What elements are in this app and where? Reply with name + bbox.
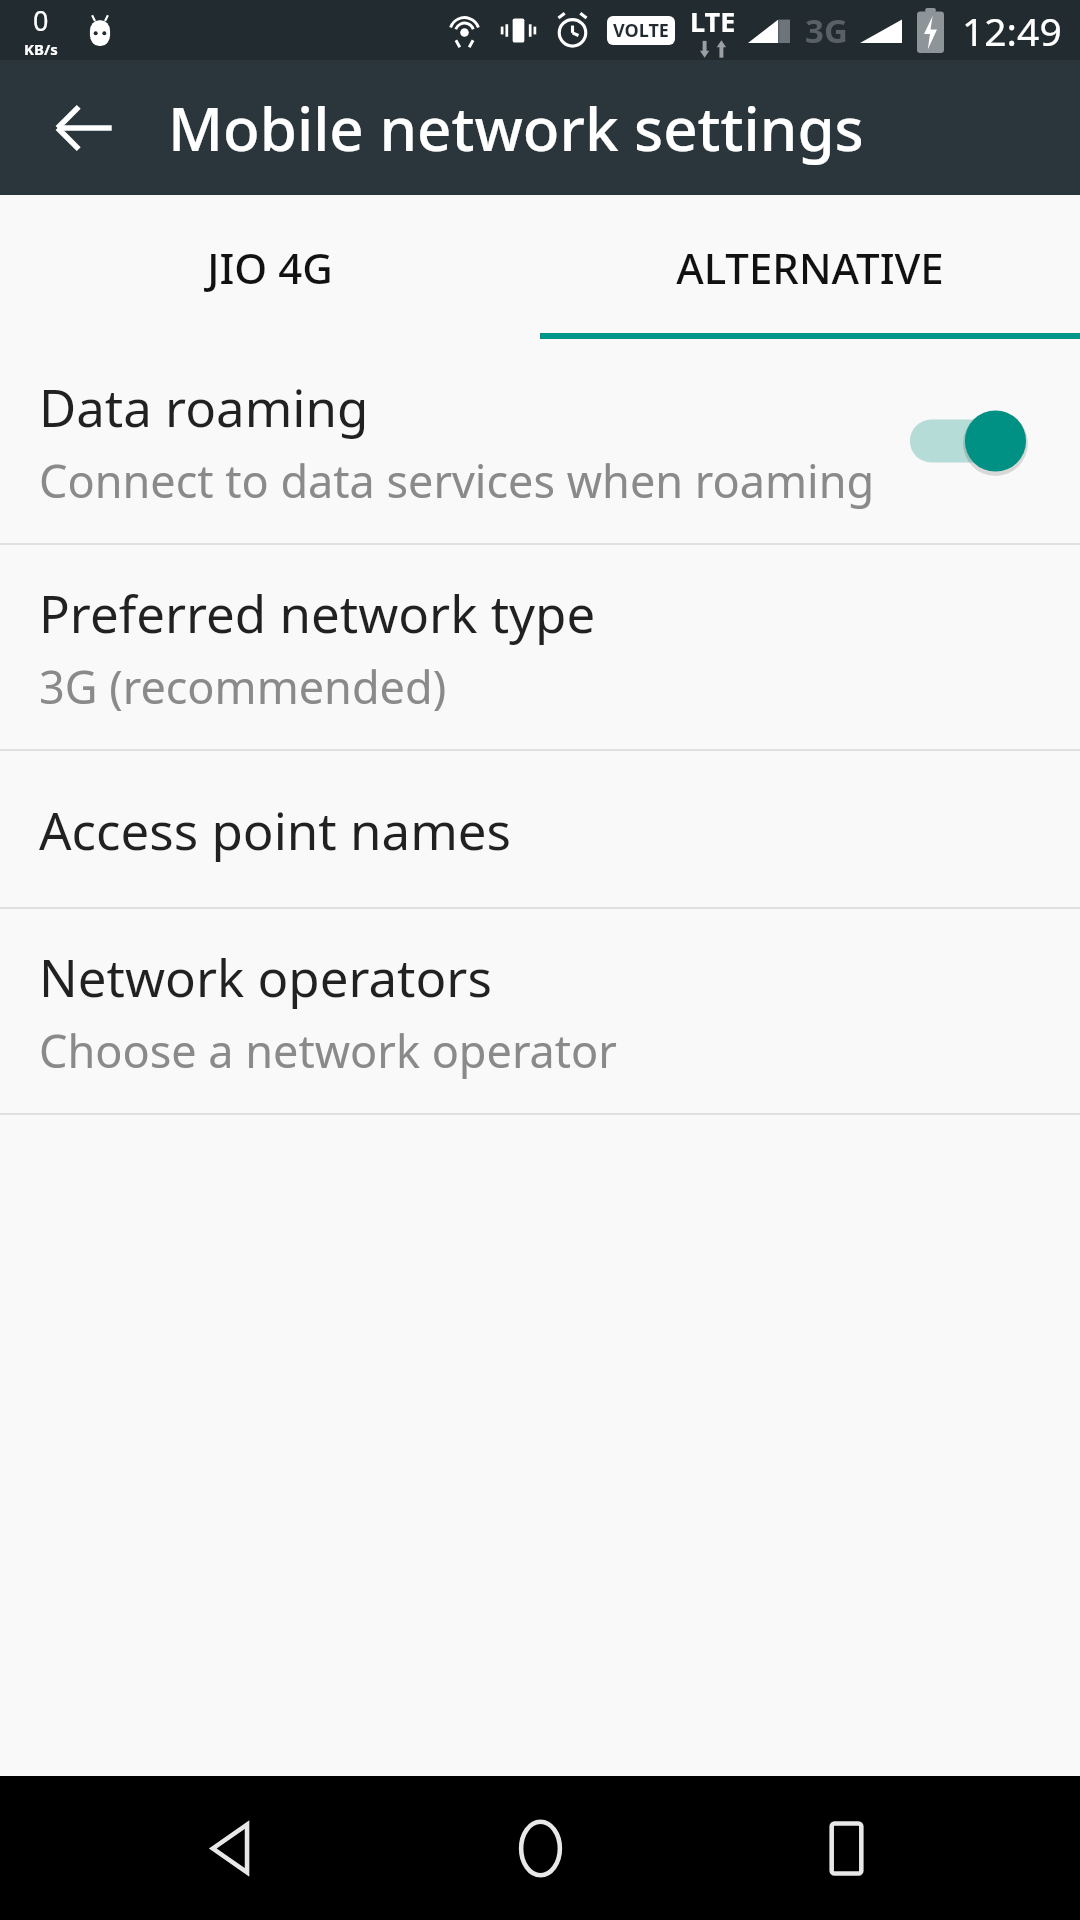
button[interactable]: Network operators (0, 909, 1080, 1113)
staticText: Connect to data services when roaming (39, 450, 875, 511)
button[interactable]: JIO 4G (0, 195, 540, 339)
staticText: Network operators (39, 942, 492, 1011)
button[interactable]: Recent apps (774, 1776, 918, 1920)
button[interactable]: Access point names (0, 751, 1080, 907)
staticText: 12:49 (962, 4, 1062, 57)
staticText: 3G (805, 8, 848, 53)
button[interactable]: Back (24, 68, 144, 188)
staticText: 0 (33, 2, 49, 39)
button[interactable]: Back (162, 1776, 306, 1920)
staticText: ALTERNATIVE (676, 239, 944, 296)
button[interactable]: ALTERNATIVE (540, 195, 1080, 339)
staticText: Access point names (39, 795, 512, 864)
button[interactable]: Preferred network type (0, 545, 1080, 749)
staticText: Preferred network type (39, 578, 596, 647)
staticText: Choose a network operator (39, 1020, 617, 1081)
button[interactable]: Data roaming (0, 339, 1080, 543)
staticText: VOLTE (613, 18, 669, 43)
button[interactable]: Home (468, 1776, 612, 1920)
staticText: JIO 4G (207, 239, 333, 296)
staticText: 3G (recommended) (39, 656, 447, 717)
staticText: LTE (690, 3, 736, 40)
button[interactable]: Data roaming toggle (903, 390, 1041, 492)
staticText: KB/s (24, 39, 58, 59)
staticText: Data roaming (39, 372, 369, 441)
staticText: Mobile network settings (168, 87, 864, 169)
